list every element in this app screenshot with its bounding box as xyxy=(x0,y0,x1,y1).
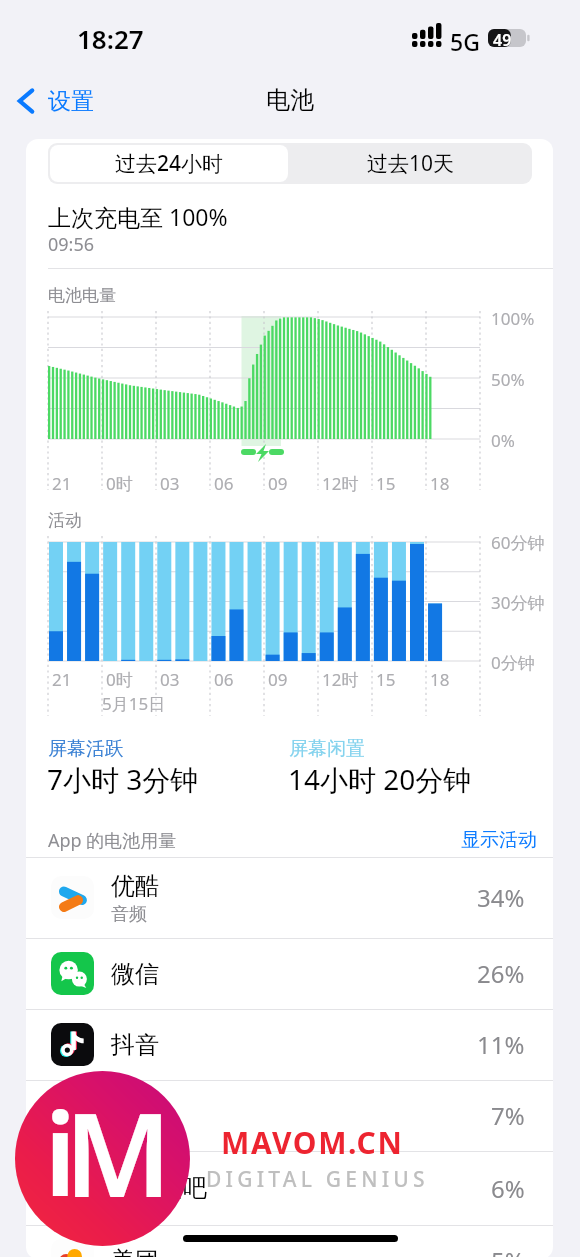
staticText: App 的电池用量 xyxy=(48,828,177,853)
button[interactable]: 美团 xyxy=(26,1225,553,1257)
button[interactable]: 过去24小时 xyxy=(50,145,288,182)
staticText: 18 xyxy=(430,668,450,691)
staticText: 百度贴吧 xyxy=(111,1173,207,1203)
staticText: 100% xyxy=(491,307,535,330)
button[interactable]: 百度贴吧 xyxy=(26,1151,553,1225)
staticText: 音频 xyxy=(111,903,147,926)
button[interactable]: 优酷 xyxy=(26,857,553,938)
staticText: 5% xyxy=(491,1244,525,1257)
staticText: 26% xyxy=(477,957,525,990)
staticText: 5G xyxy=(450,26,480,57)
staticText: 过去10天 xyxy=(367,149,455,178)
staticText: 18:27 xyxy=(77,21,144,56)
staticText: 03 xyxy=(160,472,180,495)
staticText: 电池电量 xyxy=(48,285,116,306)
staticText: 抖音 xyxy=(111,1030,159,1060)
staticText: 50% xyxy=(491,368,525,391)
staticText: 12时 xyxy=(322,472,359,495)
staticText: 18 xyxy=(430,472,450,495)
button[interactable]: 显示活动 xyxy=(456,823,542,857)
staticText: 淘宝 xyxy=(111,1101,159,1131)
staticText: 09 xyxy=(268,472,288,495)
staticText: 0时 xyxy=(106,668,133,691)
staticText: 49 xyxy=(493,29,512,51)
staticText: 显示活动 xyxy=(461,828,537,852)
staticText: 11% xyxy=(477,1028,525,1061)
button[interactable]: 抖音 xyxy=(26,1009,553,1080)
staticText: 21 xyxy=(52,472,72,495)
staticText: 34% xyxy=(477,881,525,914)
staticText: 15 xyxy=(376,472,396,495)
button[interactable]: 微信 xyxy=(26,938,553,1009)
staticText: 设置 xyxy=(48,87,94,116)
staticText: iM xyxy=(44,1074,160,1231)
staticText: 上次充电至 100% xyxy=(48,201,228,232)
staticText: 过去24小时 xyxy=(115,149,224,178)
staticText: 15 xyxy=(376,668,396,691)
staticText: 屏幕闲置 xyxy=(289,737,365,761)
button[interactable]: 设置 xyxy=(14,82,94,120)
staticText: 60分钟 xyxy=(491,531,545,554)
staticText: 7小时 3分钟 xyxy=(47,760,199,798)
button[interactable]: 过去10天 xyxy=(290,143,532,184)
staticText: 0% xyxy=(491,429,515,452)
staticText: 电池 xyxy=(266,85,314,115)
staticText: 06 xyxy=(214,668,234,691)
staticText: 活动 xyxy=(48,510,82,531)
staticText: 7% xyxy=(491,1099,525,1132)
staticText: 0分钟 xyxy=(491,651,535,674)
staticText: 03 xyxy=(160,668,180,691)
staticText: 微信 xyxy=(111,959,159,989)
staticText: 06 xyxy=(214,472,234,495)
staticText: 09:56 xyxy=(48,232,95,257)
staticText: 09 xyxy=(268,668,288,691)
staticText: 21 xyxy=(52,668,72,691)
staticText: 优酷 xyxy=(111,871,159,901)
staticText: 5月15日 xyxy=(102,692,166,715)
staticText: 屏幕活跃 xyxy=(48,737,124,761)
staticText: 14小时 20分钟 xyxy=(288,760,472,798)
staticText: 6% xyxy=(491,1172,525,1205)
staticText: 美团 xyxy=(111,1246,159,1257)
staticText: 30分钟 xyxy=(491,591,545,614)
staticText: MAVOM.CN xyxy=(221,1122,404,1163)
staticText: DIGITAL GENIUS xyxy=(206,1165,429,1194)
button[interactable]: 淘宝 xyxy=(26,1080,553,1151)
staticText: 0时 xyxy=(106,472,133,495)
staticText: 12时 xyxy=(322,668,359,691)
